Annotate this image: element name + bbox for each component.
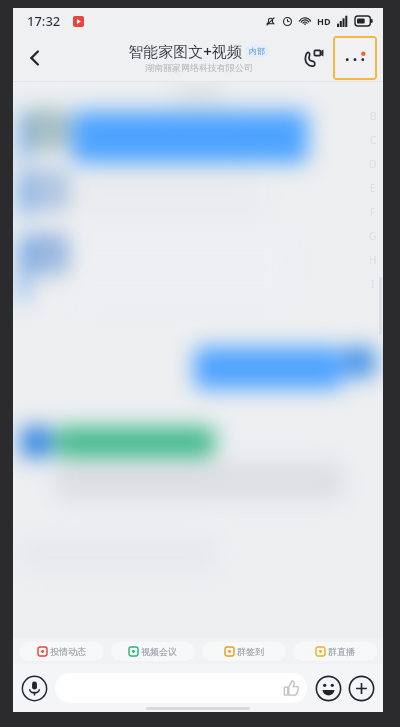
staticText: HD bbox=[317, 15, 331, 27]
button[interactable]: 群直播 bbox=[293, 642, 377, 661]
button[interactable]: Emoji bbox=[315, 675, 342, 702]
button[interactable]: Voice message bbox=[21, 675, 48, 702]
staticText: 内部 bbox=[249, 46, 265, 56]
staticText: H bbox=[369, 253, 377, 267]
button[interactable] bbox=[55, 673, 307, 703]
button[interactable]: Video call bbox=[295, 39, 333, 77]
staticText: 17:32 bbox=[27, 12, 61, 30]
staticText: 视频会议 bbox=[141, 646, 177, 657]
staticText: 湖南丽家网络科技有限公司 bbox=[145, 62, 253, 73]
button[interactable]: More options bbox=[333, 36, 377, 80]
staticText: E bbox=[370, 181, 376, 195]
staticText: 群签到 bbox=[237, 646, 264, 657]
staticText: I bbox=[371, 277, 375, 291]
staticText: C bbox=[370, 133, 377, 147]
staticText: B bbox=[370, 109, 377, 123]
staticText: F bbox=[370, 205, 376, 219]
staticText: 10:07 bbox=[184, 87, 213, 102]
staticText: 智能家图文+视频 bbox=[128, 41, 242, 61]
staticText: G bbox=[369, 229, 377, 243]
staticText: D bbox=[369, 157, 377, 171]
button[interactable]: 视频会议 bbox=[111, 642, 195, 661]
button[interactable]: Back bbox=[13, 36, 57, 80]
button[interactable]: 投情动态 bbox=[19, 642, 104, 661]
button[interactable]: More bbox=[348, 675, 375, 702]
button[interactable]: 群签到 bbox=[202, 642, 286, 661]
staticText: 群直播 bbox=[328, 646, 355, 657]
staticText: 投情动态 bbox=[50, 646, 86, 657]
